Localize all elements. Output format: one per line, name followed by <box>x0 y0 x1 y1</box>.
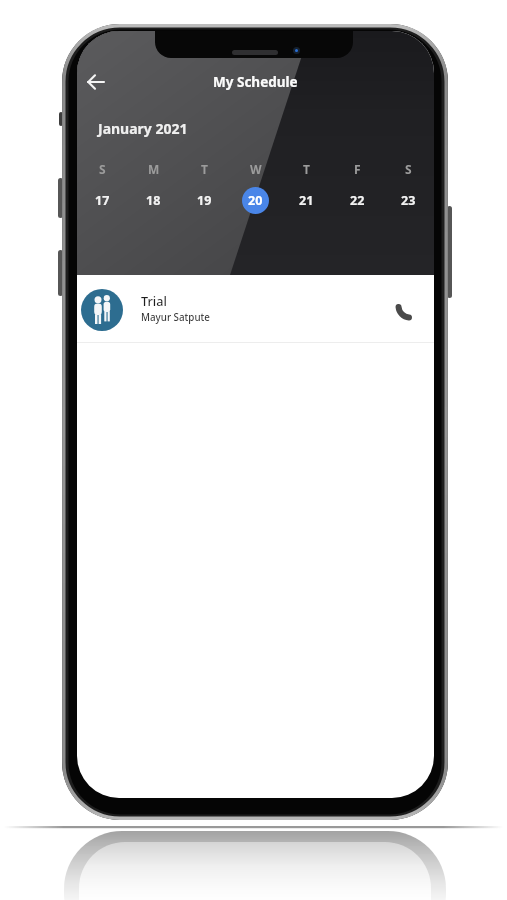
staticText: F <box>354 161 361 177</box>
button[interactable]: Trial <box>77 275 434 343</box>
staticText: Trial <box>141 293 167 310</box>
staticText: T <box>303 161 310 177</box>
staticText: S <box>99 161 106 177</box>
staticText: January 2021 <box>98 119 188 138</box>
staticText: 19 <box>197 192 212 209</box>
staticText: 17 <box>95 192 110 209</box>
button[interactable]: 19 <box>191 187 218 214</box>
staticText: 18 <box>146 192 161 209</box>
button[interactable]: 17 <box>89 187 116 214</box>
button[interactable] <box>393 302 415 324</box>
staticText: W <box>250 161 262 177</box>
staticText: T <box>201 161 208 177</box>
button[interactable] <box>83 69 109 95</box>
staticText: 23 <box>401 192 416 209</box>
staticText: 22 <box>350 192 365 209</box>
button[interactable]: 23 <box>395 187 422 214</box>
staticText: 20 <box>248 192 263 209</box>
staticText: Mayur Satpute <box>141 311 210 324</box>
button[interactable]: 21 <box>293 187 320 214</box>
button[interactable]: 18 <box>140 187 167 214</box>
button[interactable]: 22 <box>344 187 371 214</box>
staticText: 21 <box>299 192 314 209</box>
staticText: My Schedule <box>213 73 298 91</box>
staticText: M <box>148 161 160 177</box>
button[interactable]: 20 <box>242 187 269 214</box>
staticText: S <box>405 161 412 177</box>
